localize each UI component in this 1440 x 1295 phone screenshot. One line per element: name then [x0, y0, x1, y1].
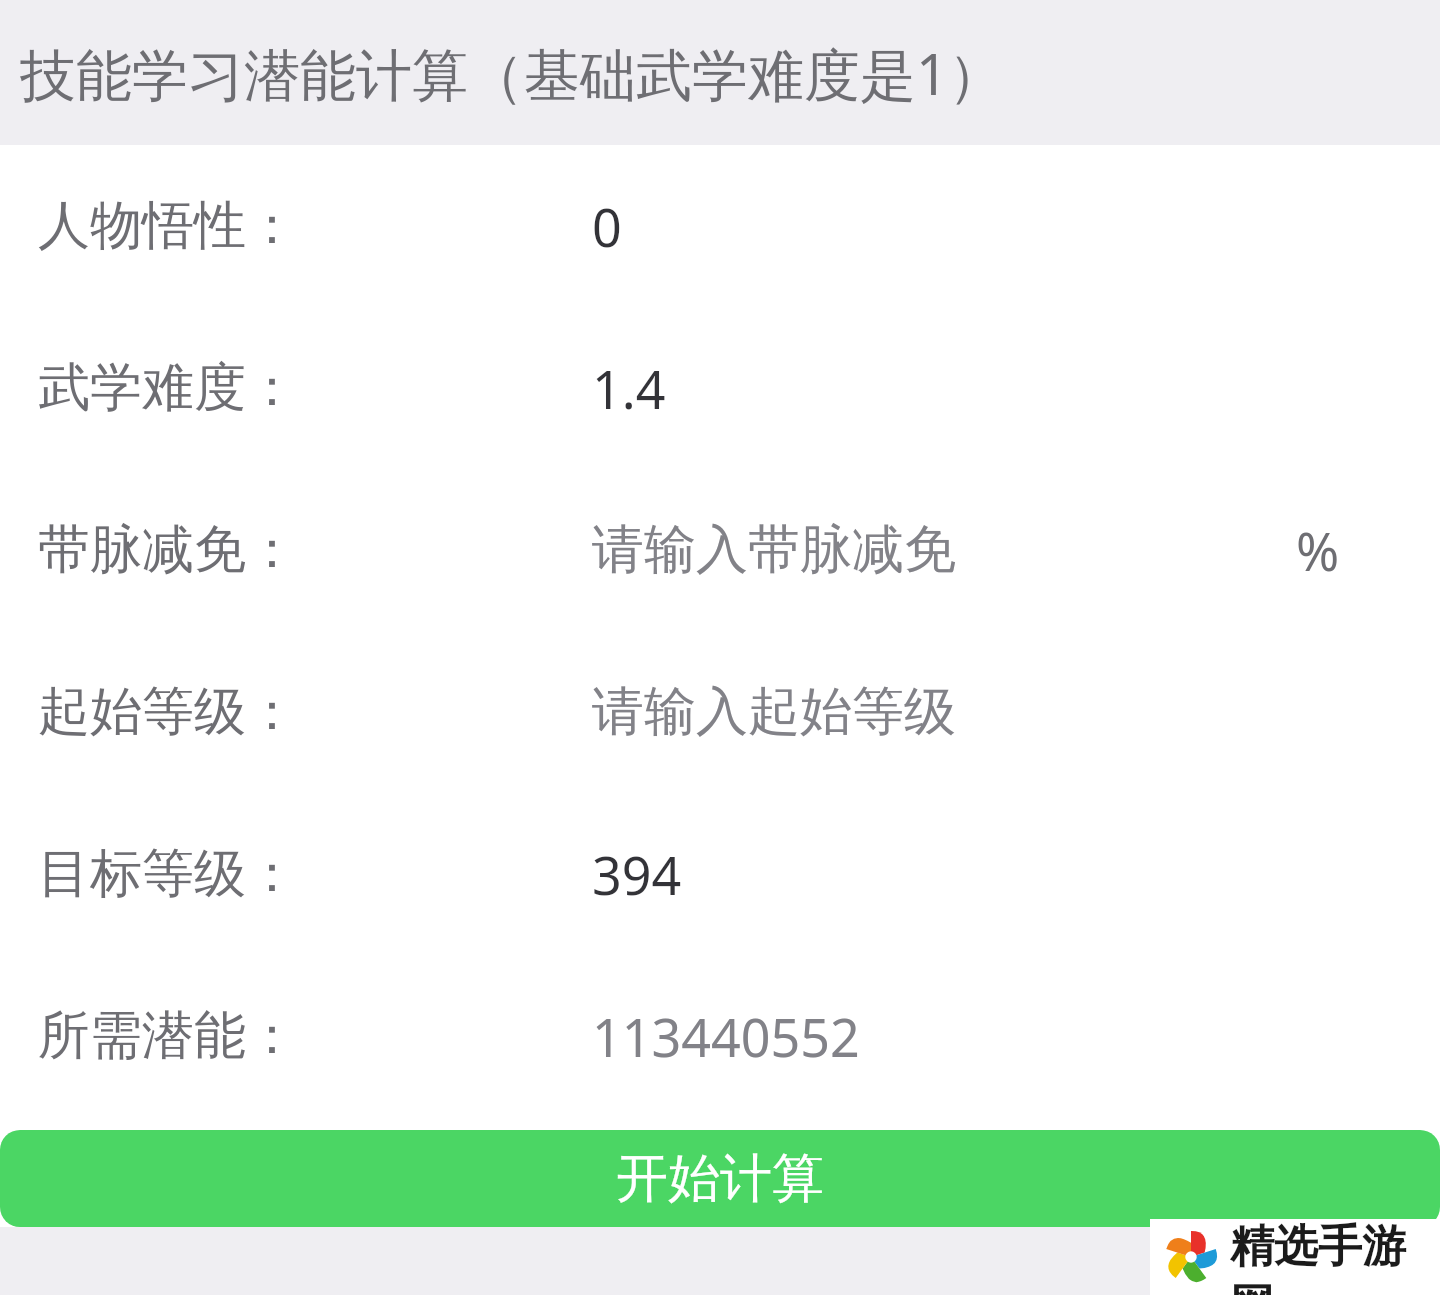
button[interactable]: 开始计算: [0, 1130, 1440, 1227]
staticText: 开始计算: [616, 1146, 824, 1212]
staticText: 所需潜能：: [38, 1003, 298, 1069]
staticText: 武学难度：: [38, 355, 298, 421]
staticText: 请输入起始等级: [592, 679, 956, 745]
button[interactable]: 武学难度：: [0, 307, 1440, 469]
button[interactable]: 所需潜能：: [0, 955, 1440, 1117]
staticText: 1.4: [592, 353, 666, 424]
button[interactable]: 目标等级：: [0, 793, 1440, 955]
staticText: 请输入带脉减免: [592, 517, 956, 583]
staticText: 精选手游网: [1230, 1219, 1440, 1295]
staticText: 起始等级：: [38, 679, 298, 745]
staticText: 目标等级：: [38, 841, 298, 907]
button[interactable]: 带脉减免：: [0, 469, 1440, 631]
staticText: 394: [592, 839, 682, 910]
button[interactable]: 起始等级：: [0, 631, 1440, 793]
staticText: 0: [592, 191, 622, 262]
staticText: 113440552: [592, 1001, 860, 1072]
staticText: 人物悟性：: [38, 193, 298, 259]
staticText: 带脉减免：: [38, 517, 298, 583]
button[interactable]: 人物悟性：: [0, 145, 1440, 307]
staticText: %: [1296, 515, 1340, 586]
staticText: 技能学习潜能计算（基础武学难度是1）: [20, 35, 1005, 111]
